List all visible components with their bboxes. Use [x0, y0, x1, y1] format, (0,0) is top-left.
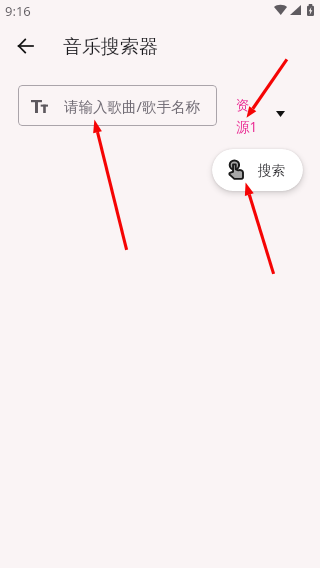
- staticText: 音乐搜索器: [63, 35, 158, 59]
- button[interactable]: Tap: [212, 149, 303, 191]
- other: Tap: [229, 161, 243, 180]
- button[interactable]: Back: [4, 25, 46, 67]
- staticText: 源1: [236, 118, 258, 136]
- staticText: 9:16: [5, 2, 31, 20]
- staticText: 资: [236, 97, 250, 114]
- button[interactable]: Select source 资源1: [232, 93, 290, 137]
- button[interactable]: 请输入歌曲/歌手名称: [18, 85, 217, 126]
- staticText: 请输入歌曲/歌手名称: [64, 96, 200, 116]
- staticText: 搜索: [258, 162, 285, 179]
